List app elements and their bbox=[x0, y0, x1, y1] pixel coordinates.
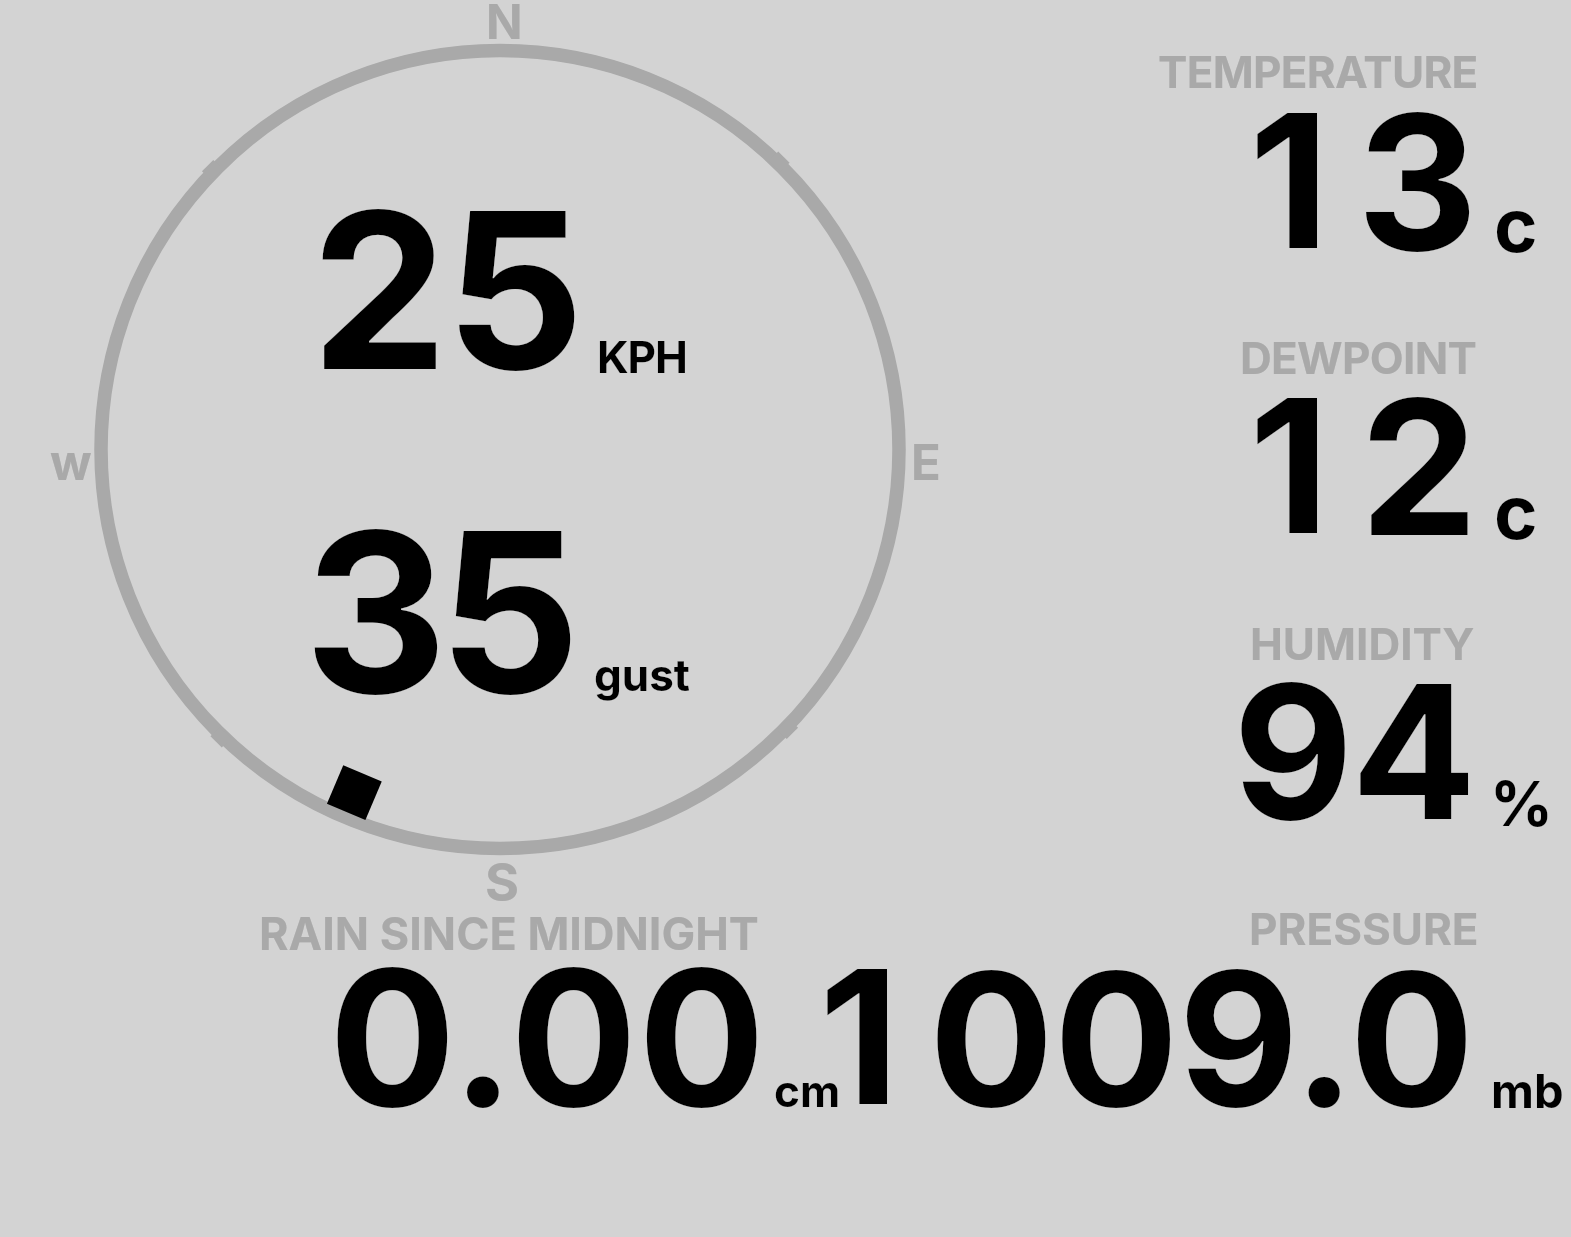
staticText: 009.0 bbox=[929, 927, 1571, 1151]
staticText: PRESSURE bbox=[1249, 902, 1571, 955]
staticText: TEMPERATURE bbox=[1158, 45, 1571, 98]
button[interactable]: Humidity bbox=[1140, 604, 1571, 854]
staticText: c bbox=[1494, 467, 1571, 557]
staticText: 25 bbox=[311, 159, 1211, 422]
button[interactable]: Dewpoint bbox=[1140, 318, 1571, 568]
staticText: 35 bbox=[304, 478, 1204, 747]
staticText: RAIN SINCE MIDNIGHT bbox=[259, 906, 1159, 960]
staticText: S bbox=[485, 851, 1385, 914]
staticText: 94 bbox=[1233, 640, 1571, 864]
staticText: c bbox=[1494, 180, 1571, 270]
staticText: gust bbox=[594, 648, 1494, 701]
button[interactable]: Pressure bbox=[845, 895, 1571, 1128]
staticText: % bbox=[1490, 766, 1571, 841]
staticText: cm bbox=[774, 1064, 1571, 1117]
button[interactable]: Temperature bbox=[1140, 30, 1571, 280]
staticText: KPH bbox=[597, 330, 1497, 383]
staticText: 3 bbox=[1357, 69, 1571, 295]
button[interactable]: Wind speed and direction bbox=[86, 0, 914, 900]
staticText: w bbox=[50, 433, 950, 492]
staticText: HUMIDITY bbox=[1250, 617, 1571, 670]
staticText: 1 bbox=[819, 924, 1571, 1149]
staticText: N bbox=[486, 0, 1386, 50]
button[interactable]: Rain since midnight bbox=[240, 898, 840, 1128]
staticText: 2 bbox=[1360, 354, 1571, 580]
staticText: DEWPOINT bbox=[1240, 331, 1571, 384]
staticText: 1 bbox=[1249, 68, 1571, 293]
staticText: 1 bbox=[1249, 353, 1571, 578]
staticText: E bbox=[911, 433, 1571, 492]
staticText: 0.00 bbox=[329, 924, 1229, 1151]
staticText: mb bbox=[1491, 1062, 1571, 1119]
